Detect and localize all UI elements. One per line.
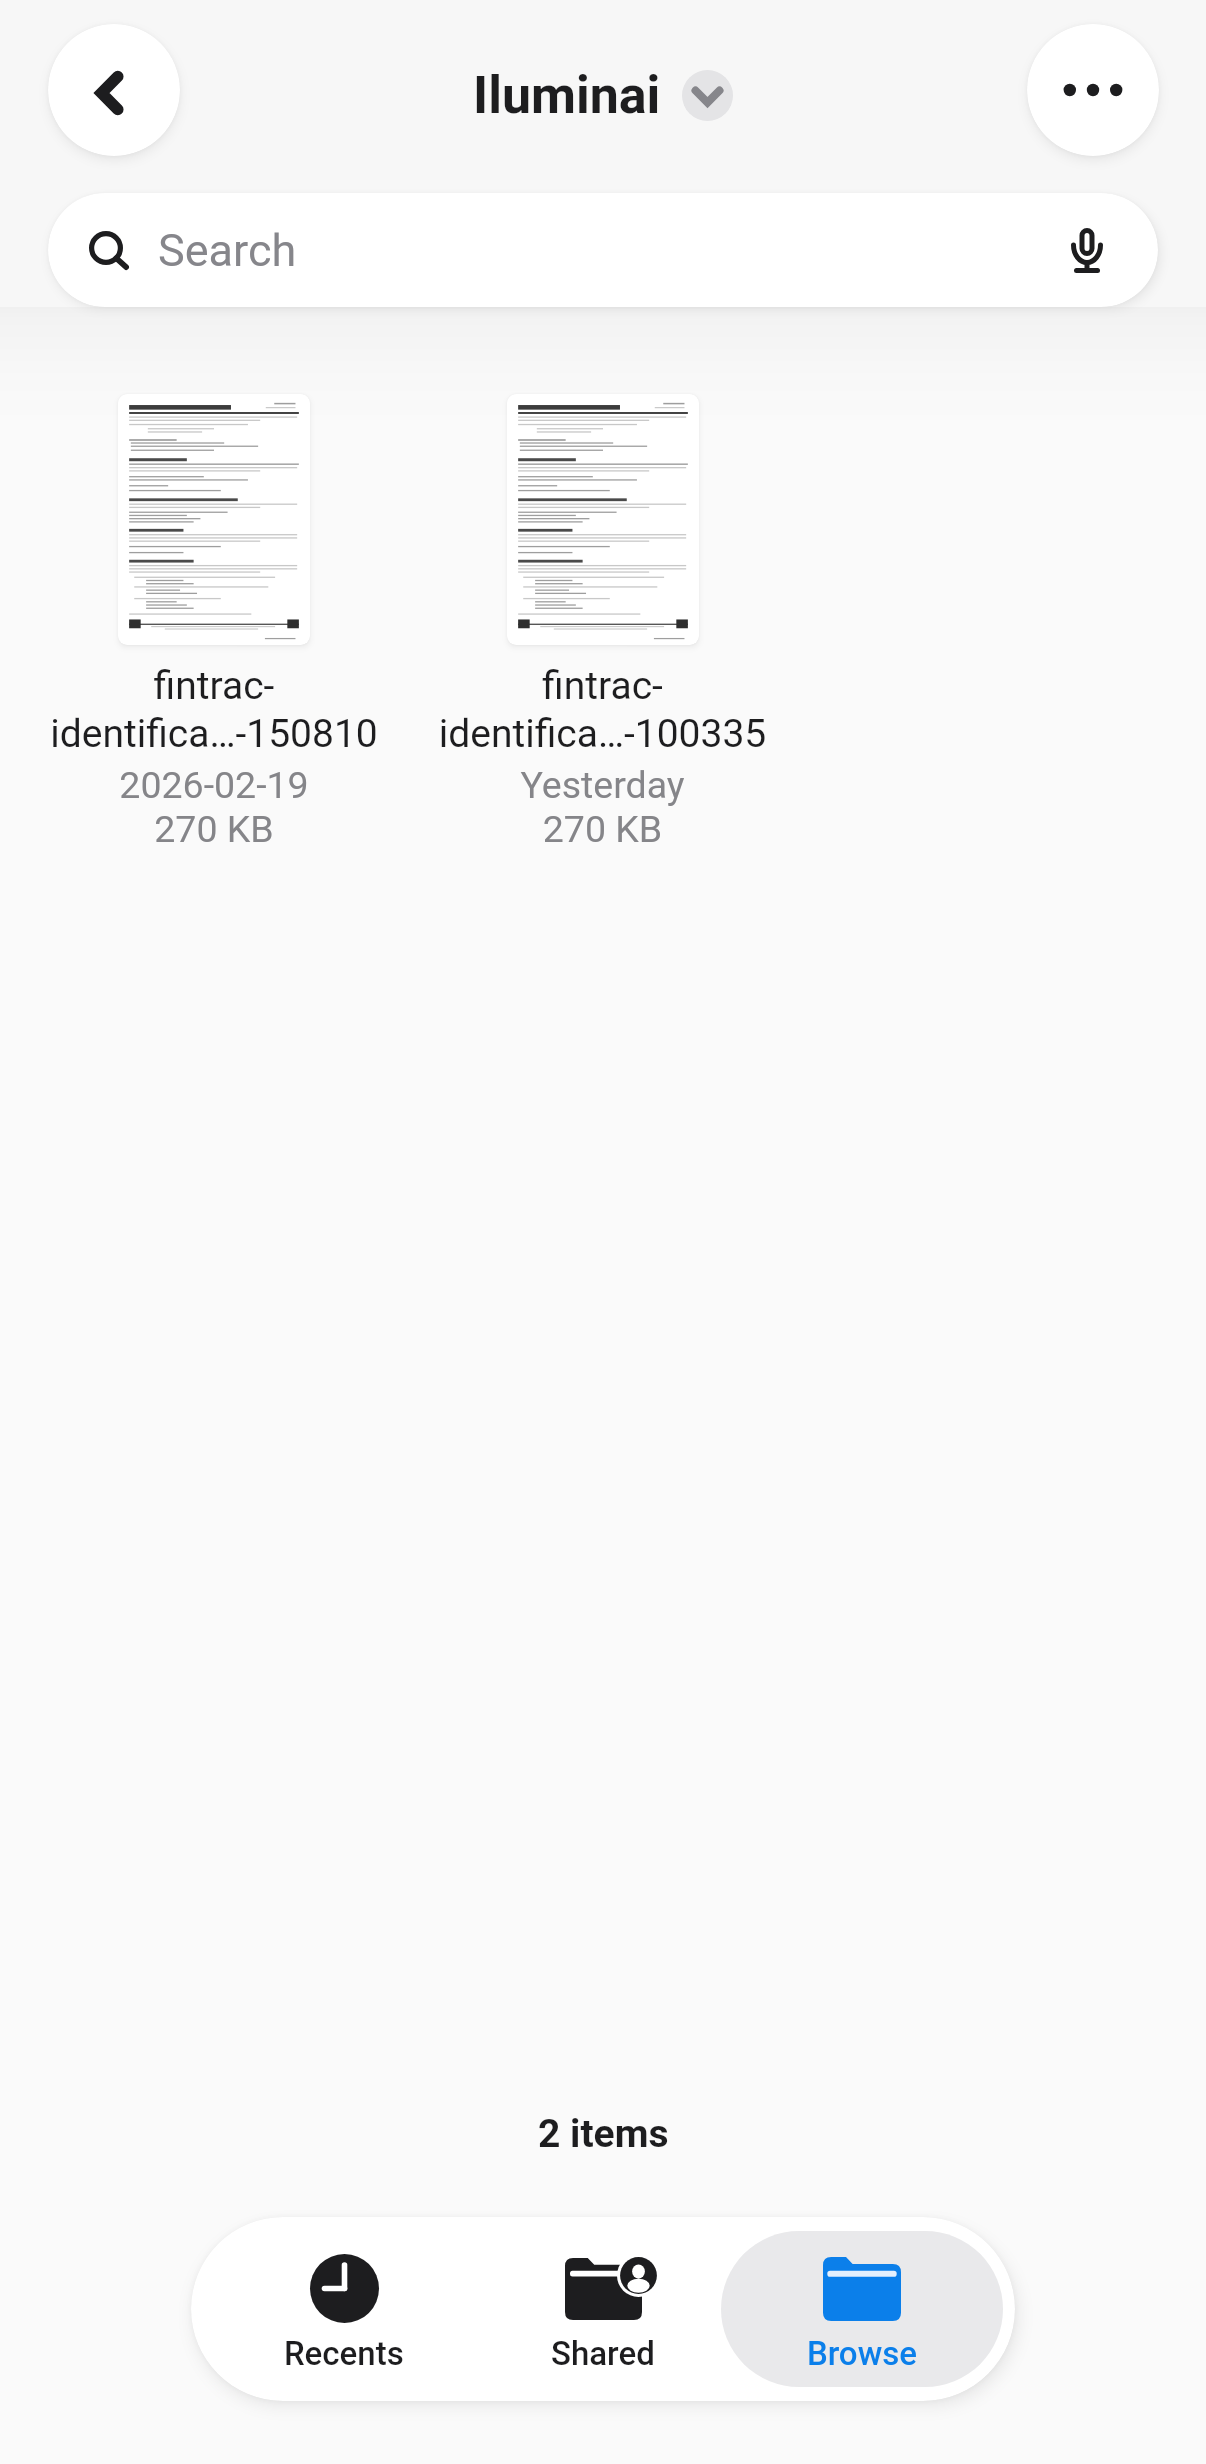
button[interactable]: Search	[48, 193, 1158, 307]
staticText: Shared	[551, 2334, 655, 2373]
staticText: 270 KB	[20, 807, 408, 851]
staticText: 2026-02-19	[20, 763, 408, 807]
staticText: Search	[158, 224, 297, 277]
button[interactable]: Recents	[203, 2231, 485, 2387]
staticText: 270 KB	[408, 807, 797, 851]
staticText: Browse	[807, 2334, 917, 2373]
button[interactable]: Back	[48, 24, 180, 156]
button[interactable]: Open fintrac-identifica…-150810	[20, 394, 408, 851]
staticText: Recents	[284, 2334, 404, 2373]
staticText: Yesterday	[408, 763, 797, 807]
button[interactable]: Shared	[462, 2231, 744, 2387]
button[interactable]: Browse	[721, 2231, 1003, 2387]
other: Voice search	[1071, 228, 1103, 273]
staticText: fintrac-identifica…-100335	[414, 663, 791, 757]
button[interactable]: Change folder	[682, 70, 733, 121]
staticText: fintrac-identifica…-150810	[26, 663, 402, 757]
staticText: Iluminai	[473, 65, 661, 126]
button[interactable]: Open fintrac-identifica…-100335	[408, 394, 797, 851]
staticText: 2 items	[538, 2111, 669, 2157]
button[interactable]: More options	[1027, 24, 1159, 156]
